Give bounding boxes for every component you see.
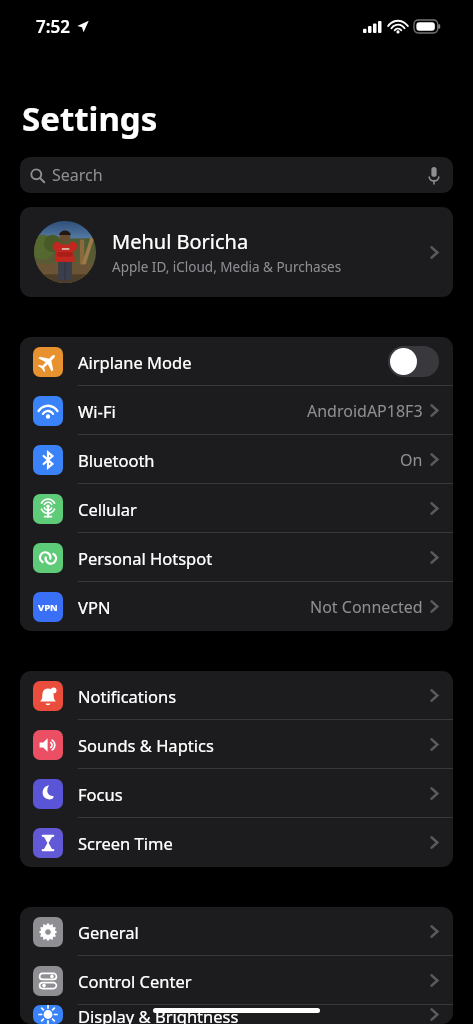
staticText: Focus xyxy=(78,783,123,805)
staticText: Mehul Boricha xyxy=(112,228,249,255)
button[interactable]: General xyxy=(20,907,453,956)
staticText: Not Connected xyxy=(310,596,423,618)
button[interactable]: Wi-Fi xyxy=(20,386,453,435)
button[interactable]: Bluetooth xyxy=(20,435,453,484)
staticText: Sounds & Haptics xyxy=(78,734,214,756)
staticText: Bluetooth xyxy=(78,449,155,471)
button[interactable]: Cellular xyxy=(20,484,453,533)
staticText: General xyxy=(78,921,139,943)
button[interactable]: Display & Brightness xyxy=(20,1005,453,1024)
button[interactable]: Screen Time xyxy=(20,818,453,867)
staticText: VPN xyxy=(38,601,58,614)
staticText: Wi-Fi xyxy=(78,400,116,422)
button[interactable]: Airplane Mode xyxy=(20,337,453,386)
button[interactable]: Mehul Boricha xyxy=(20,207,453,297)
button[interactable]: Personal Hotspot xyxy=(20,533,453,582)
staticText: Display & Brightness xyxy=(78,1005,239,1024)
button[interactable]: VPN xyxy=(20,582,453,631)
staticText: Notifications xyxy=(78,685,177,707)
button[interactable]: Notifications xyxy=(20,671,453,720)
button[interactable]: Airplane Mode, off xyxy=(388,346,439,377)
staticText: 7:52 xyxy=(36,15,70,38)
staticText: Screen Time xyxy=(78,832,173,854)
staticText: Airplane Mode xyxy=(78,351,192,373)
staticText: Control Center xyxy=(78,970,192,992)
button[interactable]: Control Center xyxy=(20,956,453,1005)
button[interactable]: Voice search xyxy=(425,166,443,184)
staticText: AndroidAP18F3 xyxy=(307,400,423,422)
staticText: Cellular xyxy=(78,498,137,520)
staticText: Settings xyxy=(22,96,158,141)
button[interactable]: Search xyxy=(20,157,453,193)
button[interactable]: Sounds & Haptics xyxy=(20,720,453,769)
staticText: Personal Hotspot xyxy=(78,547,213,569)
staticText: On xyxy=(400,449,423,471)
staticText: Apple ID, iCloud, Media & Purchases xyxy=(112,258,342,276)
button[interactable]: Focus xyxy=(20,769,453,818)
staticText: VPN xyxy=(78,596,111,618)
staticText: Search xyxy=(52,164,103,186)
